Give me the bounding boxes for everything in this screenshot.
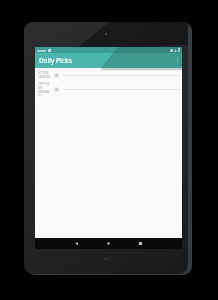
button[interactable]: Home [104,239,113,248]
button[interactable]: Recent apps [136,239,145,248]
staticText: ACTIVE LISTING [38,71,51,79]
button[interactable]: Back [72,239,81,248]
staticText: ENTERING SIGNAL ID [38,82,51,96]
button[interactable]: ENTERING SIGNAL ID [35,82,182,96]
button[interactable]: ACTIVE LISTING [35,68,182,82]
staticText: Daily Picks [39,56,72,65]
button[interactable]: More options [172,53,182,68]
other: Field icon [54,87,59,92]
other: Field icon [54,73,59,78]
